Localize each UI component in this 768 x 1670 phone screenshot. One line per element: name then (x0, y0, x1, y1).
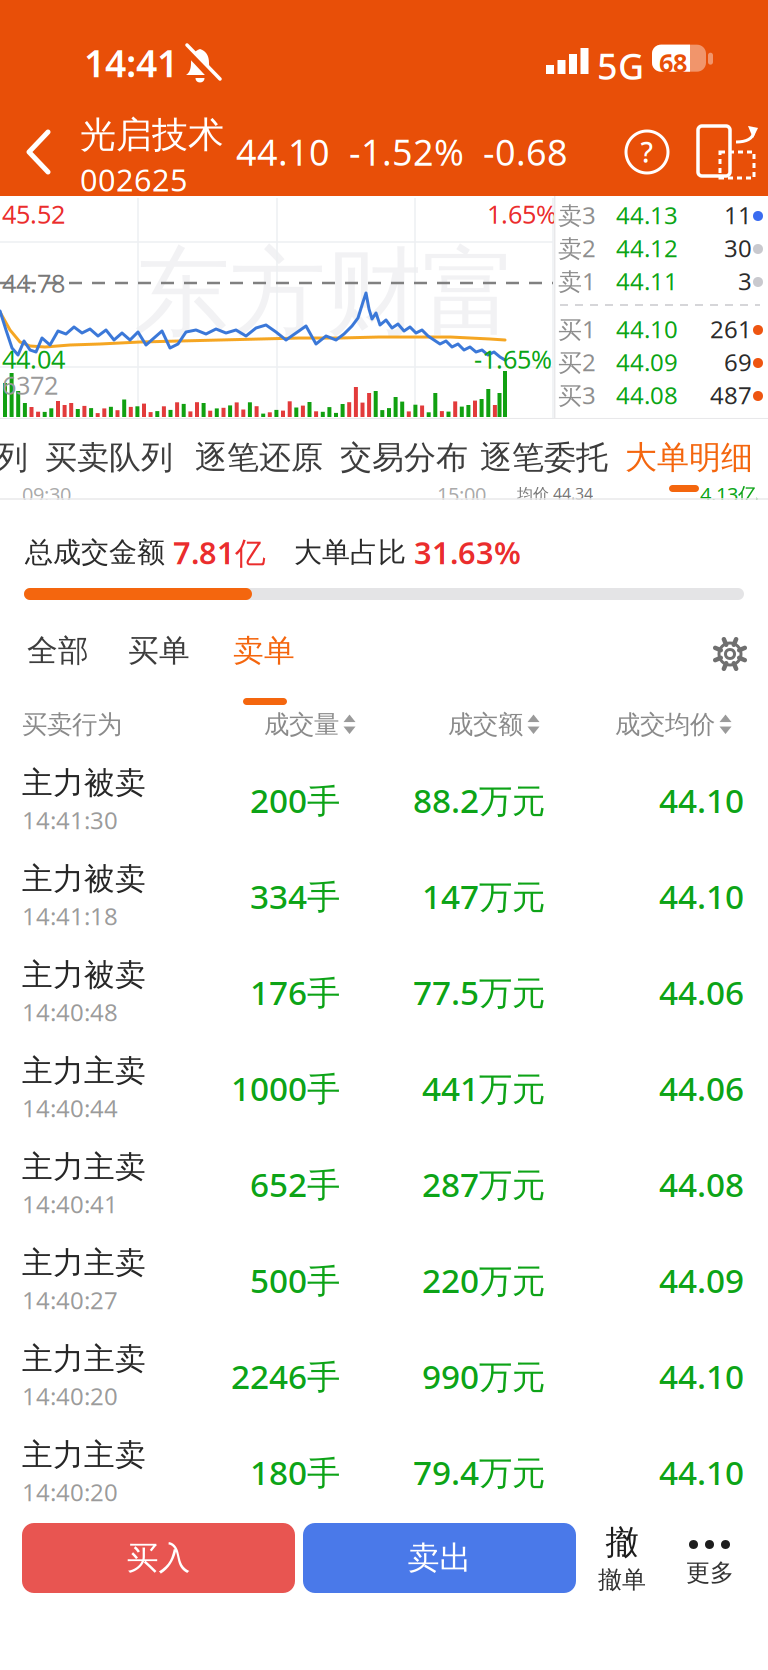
button[interactable]: 撤 (598, 1522, 646, 1594)
button[interactable]: Help (624, 129, 670, 175)
button[interactable]: 队列 (0, 438, 28, 477)
staticText: 14:40:27 (22, 1284, 118, 1316)
button[interactable]: 成交额 (356, 709, 540, 740)
staticText: 44.11 (616, 265, 678, 297)
button[interactable]: 交易分布 (340, 438, 468, 477)
staticText: 147万元 (422, 874, 545, 918)
staticText: 主力主卖 (22, 1436, 146, 1474)
staticText: 卖出 (407, 1538, 471, 1578)
staticText: 成交均价 (615, 709, 715, 740)
staticText: 买入 (126, 1538, 190, 1578)
staticText: 44.10 (659, 778, 744, 822)
staticText: 大单明细 (625, 438, 753, 477)
staticText: 14:40:41 (22, 1188, 118, 1220)
button[interactable]: 大单明细 (625, 438, 753, 477)
staticText: 79.4万元 (413, 1450, 545, 1494)
staticText: 买单 (128, 632, 190, 670)
staticText: 990万元 (422, 1354, 545, 1398)
staticText: 44.10 (616, 313, 678, 345)
staticText: 200手 (250, 778, 340, 822)
staticText: -0.68 (483, 128, 568, 176)
button[interactable]: 逐笔还原 (195, 438, 323, 477)
staticText: 2246手 (231, 1354, 340, 1398)
staticText: 成交额 (448, 709, 523, 740)
staticText: 5G (597, 42, 644, 90)
button[interactable]: 卖单 (233, 632, 295, 670)
staticText: 44.04 (2, 342, 65, 376)
staticText: 44.10 (659, 874, 744, 918)
staticText: 44.13 (616, 199, 678, 231)
staticText: 44.06 (659, 970, 744, 1014)
staticText: 逐笔委托 (480, 438, 608, 477)
button[interactable]: Settings (712, 636, 748, 672)
staticText: 31.63% (414, 532, 521, 573)
staticText: 总成交金额 (25, 535, 173, 570)
staticText: 撤 (605, 1522, 638, 1563)
staticText: 买2 (558, 346, 596, 378)
staticText: 180手 (250, 1450, 340, 1494)
staticText: 44.10 (659, 1354, 744, 1398)
button[interactable]: 全部 (27, 632, 89, 670)
staticText: 主力主卖 (22, 1340, 146, 1378)
staticText: 44.12 (616, 232, 678, 264)
staticText: 逐笔还原 (195, 438, 323, 477)
staticText: 44.10 (659, 1450, 744, 1494)
staticText: 主力主卖 (22, 1052, 146, 1090)
button[interactable]: Landscape view (698, 126, 758, 180)
staticText: 买1 (558, 313, 596, 345)
staticText: 14:40:44 (22, 1092, 118, 1124)
staticText: 14:40:20 (22, 1476, 118, 1508)
staticText: 334手 (250, 874, 340, 918)
staticText: 卖2 (558, 232, 596, 264)
staticText: 176手 (250, 970, 340, 1014)
staticText: 45.52 (2, 197, 65, 231)
staticText: 15:00 (437, 481, 486, 508)
staticText: 1.65% (487, 197, 557, 231)
staticText: 卖单 (233, 632, 295, 670)
staticText: 主力被卖 (22, 956, 146, 994)
staticText: 500手 (250, 1258, 340, 1302)
staticText: 3 (738, 265, 752, 297)
staticText: 261 (710, 313, 752, 345)
staticText: 7.81亿 (173, 532, 266, 573)
staticText: 卖1 (558, 265, 596, 297)
staticText: 主力主卖 (22, 1244, 146, 1282)
button[interactable]: 买卖队列 (45, 438, 173, 477)
button[interactable]: 成交量 (222, 709, 356, 740)
staticText: 大单占比 (266, 535, 414, 570)
staticText: 77.5万元 (413, 970, 545, 1014)
staticText: 主力主卖 (22, 1148, 146, 1186)
button[interactable]: 成交均价 (540, 709, 732, 740)
staticText: 652手 (250, 1162, 340, 1206)
button[interactable]: More (686, 1540, 734, 1587)
staticText: 44.06 (659, 1066, 744, 1110)
staticText: 光启技术 (80, 113, 224, 157)
staticText: 287万元 (422, 1162, 545, 1206)
staticText: 6372 (2, 368, 58, 402)
staticText: 14:41 (84, 38, 178, 88)
staticText: 主力被卖 (22, 764, 146, 802)
button[interactable]: 逐笔委托 (480, 438, 608, 477)
staticText: 69 (724, 346, 752, 378)
staticText: 44.78 (2, 266, 65, 300)
button[interactable]: 买单 (128, 632, 190, 670)
button[interactable]: 卖出 (303, 1523, 576, 1593)
staticText: 交易分布 (340, 438, 468, 477)
staticText: 30 (724, 232, 752, 264)
staticText: 1000手 (231, 1066, 340, 1110)
staticText: 14:40:48 (22, 996, 118, 1028)
staticText: ? (640, 133, 653, 171)
button[interactable]: Back (24, 128, 54, 176)
staticText: 买3 (558, 379, 596, 411)
staticText: 09:30 (22, 481, 71, 508)
staticText: 均价 44.34 (517, 483, 593, 504)
button[interactable]: 买卖行为 (22, 709, 222, 740)
staticText: 220万元 (422, 1258, 545, 1302)
staticText: 4.13亿 (700, 481, 758, 508)
staticText: 主力被卖 (22, 860, 146, 898)
staticText: -1.52% (349, 128, 464, 176)
button[interactable]: 买入 (22, 1523, 295, 1593)
staticText: 002625 (80, 159, 188, 200)
staticText: 买卖队列 (45, 438, 173, 477)
staticText: 44.08 (659, 1162, 744, 1206)
